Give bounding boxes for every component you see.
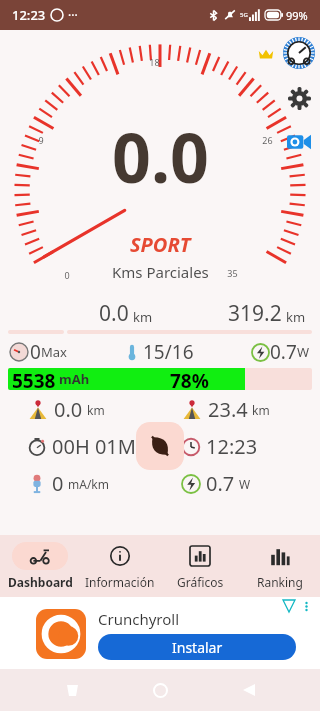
staticText: 0 <box>52 470 64 497</box>
staticText: Dashboard <box>8 574 73 590</box>
staticText: mAh <box>59 370 90 388</box>
staticText: 00H 01M <box>52 433 136 460</box>
staticText: W <box>239 476 251 492</box>
staticText: Ranking <box>257 574 303 590</box>
staticText: 0.7 <box>270 339 297 365</box>
staticText: 0.7 <box>206 470 235 497</box>
staticText: km <box>252 402 270 418</box>
button[interactable]: Vehicle <box>136 422 184 470</box>
button[interactable]: Instalar <box>98 634 296 660</box>
staticText: 26 <box>262 134 273 146</box>
staticText: 23.4 <box>208 396 248 423</box>
staticText: 12:23 <box>12 6 46 24</box>
staticText: Kms Parciales <box>112 262 209 282</box>
button[interactable]: Gráficos <box>160 535 240 597</box>
button[interactable]: Información <box>80 535 160 597</box>
button[interactable]: Ranking <box>240 535 320 597</box>
staticText: Instalar <box>172 638 223 657</box>
staticText: 5G <box>240 11 248 19</box>
staticText: ··· <box>68 7 78 23</box>
staticText: SPORT <box>130 231 191 258</box>
staticText: 0.0 <box>54 396 83 423</box>
button[interactable]: Back <box>232 673 266 707</box>
staticText: mA/km <box>68 476 109 492</box>
staticText: 0 <box>30 339 41 365</box>
staticText: 0 <box>64 269 70 281</box>
button[interactable]: Record video <box>283 126 315 158</box>
staticText: W <box>297 343 310 361</box>
staticText: Gráficos <box>177 574 224 590</box>
staticText: Información <box>85 574 155 590</box>
staticText: Max <box>41 343 67 361</box>
staticText: Crunchyroll <box>98 609 180 629</box>
staticText: 35 <box>227 267 238 279</box>
staticText: 0.0 <box>99 299 129 328</box>
button[interactable]: Recents <box>55 673 89 707</box>
staticText: 5538 <box>12 368 56 390</box>
staticText: 15/16 <box>143 339 194 365</box>
button[interactable]: App logo <box>282 36 316 70</box>
staticText: km <box>286 308 306 326</box>
staticText: 0.0 <box>112 110 209 203</box>
staticText: km <box>87 402 105 418</box>
staticText: 319.2 <box>228 299 282 328</box>
button[interactable]: Dashboard <box>0 535 80 597</box>
button[interactable]: Home <box>143 673 177 707</box>
staticText: km <box>133 308 153 326</box>
staticText: 78% <box>170 368 209 390</box>
staticText: 12:23 <box>206 433 258 460</box>
staticText: 18 <box>149 56 160 68</box>
staticText: 9 <box>38 134 44 146</box>
staticText: 99% <box>286 8 308 23</box>
button[interactable]: Settings <box>283 82 315 114</box>
